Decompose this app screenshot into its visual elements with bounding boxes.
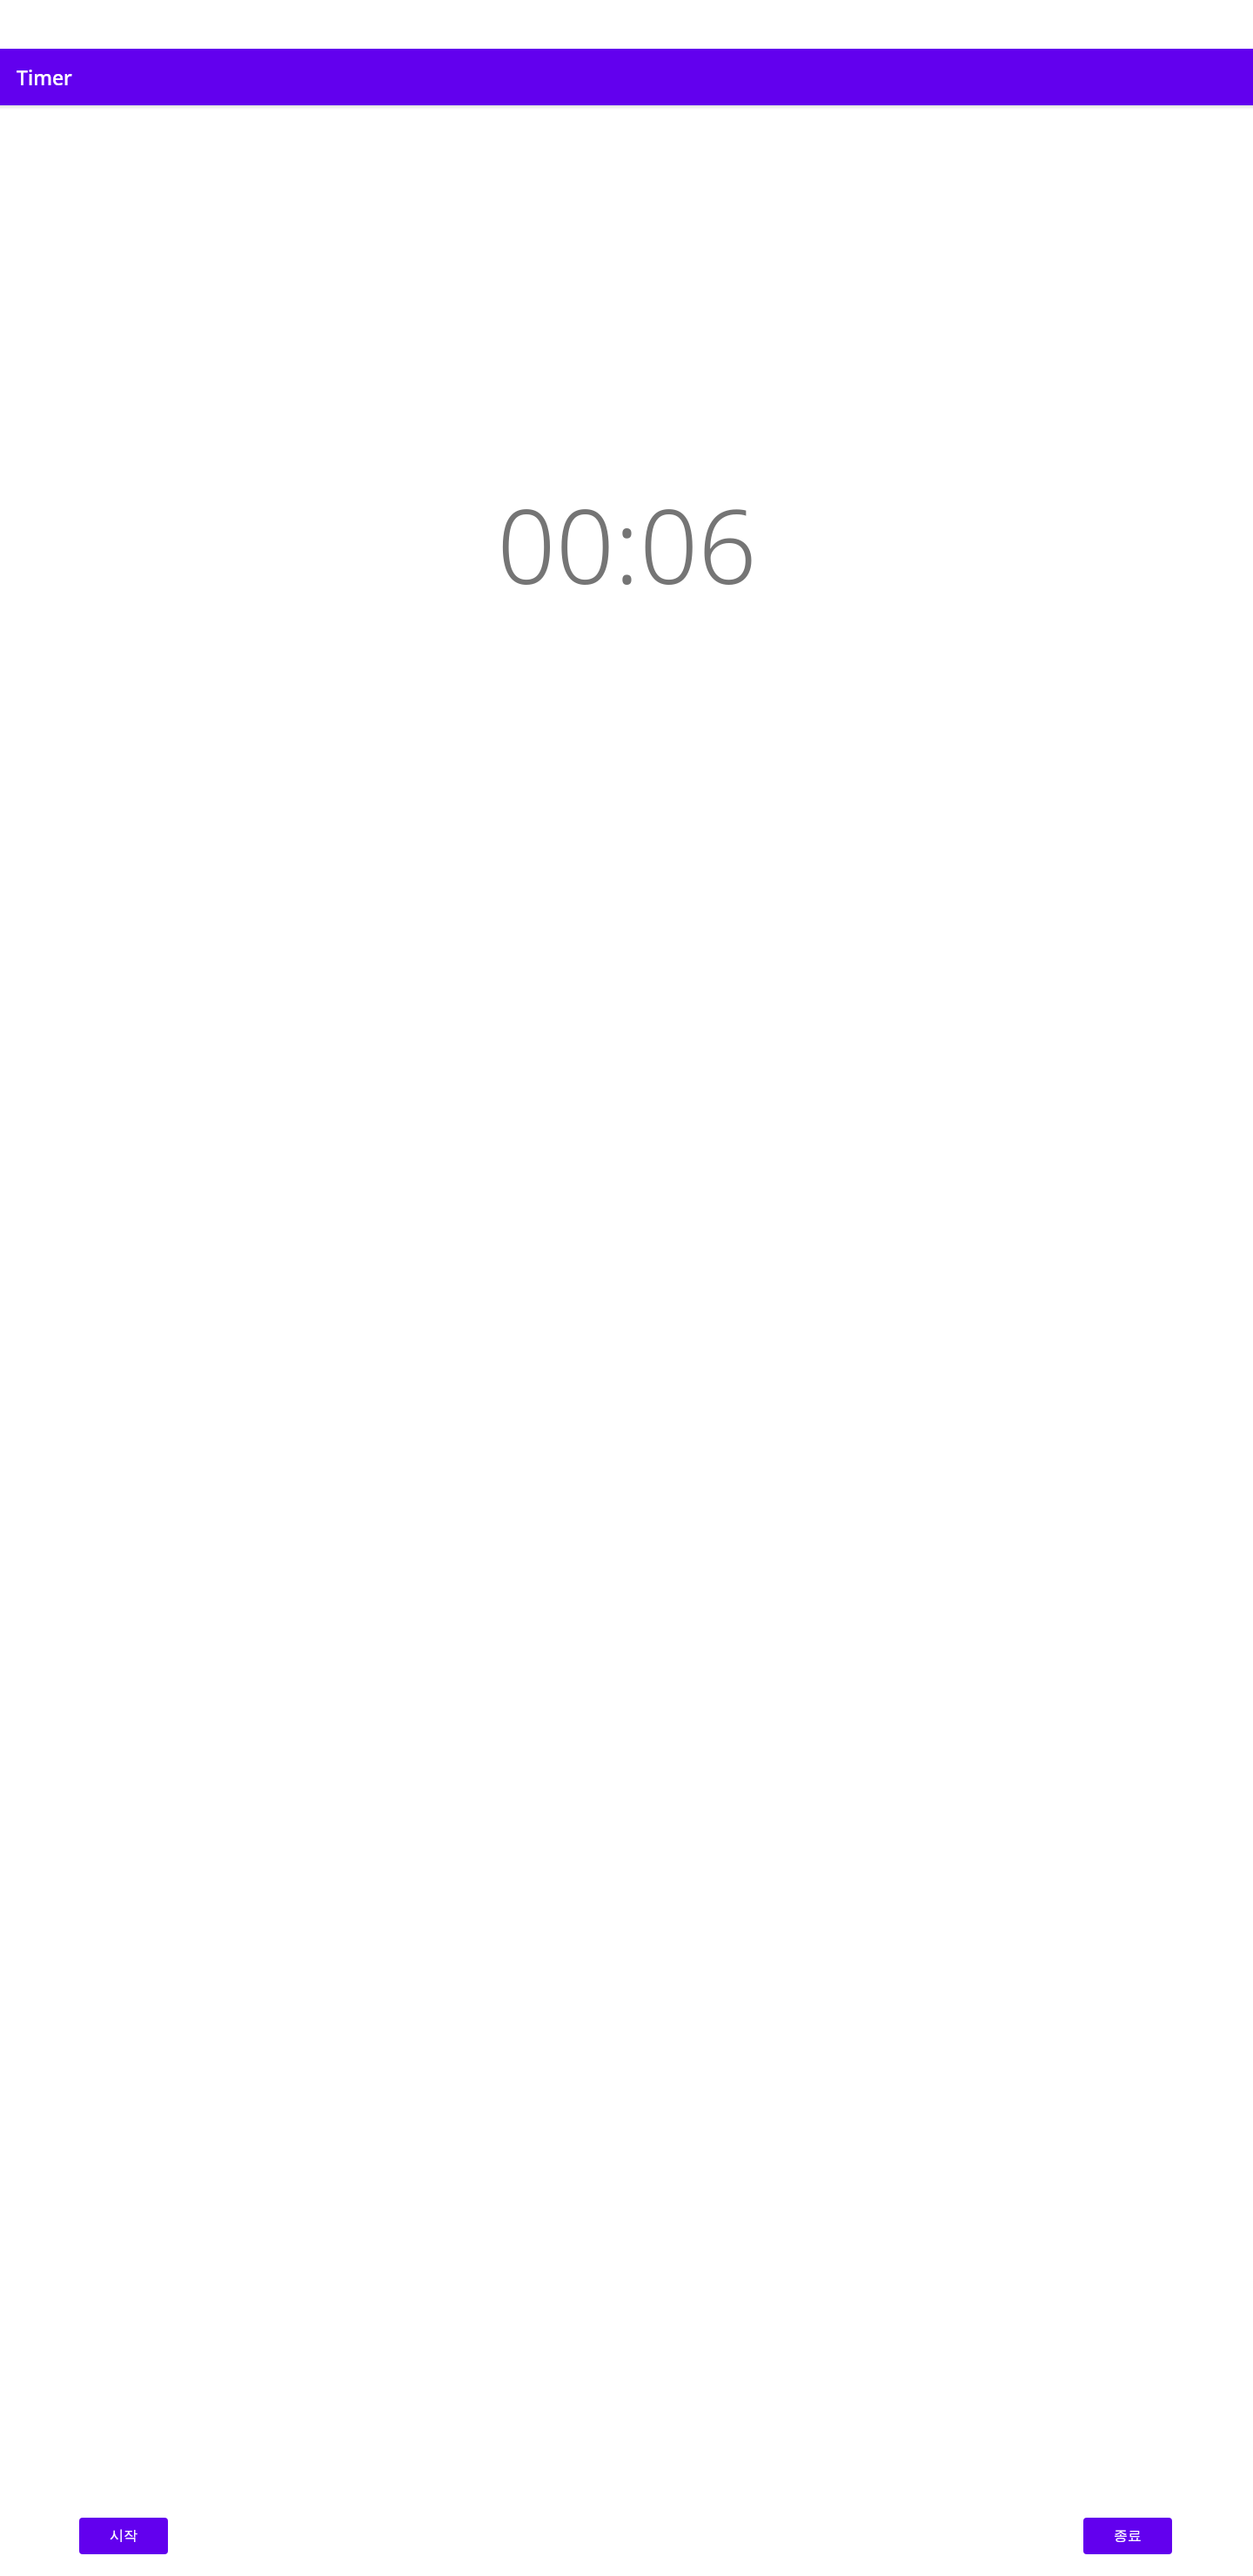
- button[interactable]: 시작: [79, 2518, 168, 2554]
- staticText: 00:06: [497, 474, 757, 594]
- staticText: 시작: [110, 2527, 137, 2545]
- button[interactable]: 종료: [1083, 2518, 1172, 2554]
- staticText: Timer: [17, 64, 72, 91]
- staticText: 종료: [1114, 2527, 1142, 2545]
